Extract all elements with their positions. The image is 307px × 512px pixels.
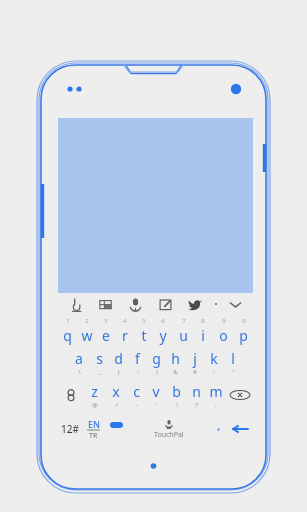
button[interactable]: n bbox=[186, 378, 206, 412]
staticText: \ bbox=[78, 368, 81, 376]
button[interactable]: Period bbox=[210, 412, 226, 446]
staticText: n bbox=[192, 382, 201, 401]
staticText: v bbox=[152, 382, 160, 401]
staticText: u bbox=[179, 326, 188, 345]
staticText: ( bbox=[118, 368, 120, 376]
staticText: # bbox=[193, 368, 197, 376]
button[interactable]: m bbox=[206, 378, 226, 412]
staticText: _ bbox=[98, 368, 101, 376]
staticText: ' bbox=[155, 401, 157, 409]
button[interactable]: c bbox=[126, 378, 146, 412]
staticText: @ bbox=[92, 401, 98, 409]
staticText: b bbox=[172, 382, 181, 401]
staticText: TR bbox=[89, 431, 98, 441]
button[interactable]: k bbox=[204, 346, 223, 378]
staticText: " bbox=[232, 368, 235, 376]
button[interactable]: Space bbox=[127, 412, 210, 446]
staticText: ; bbox=[213, 368, 215, 376]
button[interactable]: d bbox=[109, 346, 128, 378]
button[interactable]: 2 bbox=[77, 316, 96, 346]
button[interactable]: f bbox=[128, 346, 147, 378]
button[interactable]: EN bbox=[82, 412, 105, 446]
button[interactable]: Enter bbox=[226, 412, 253, 446]
staticText: p bbox=[239, 326, 248, 345]
staticText: j bbox=[193, 349, 197, 368]
button[interactable]: Shift bbox=[58, 378, 84, 412]
staticText: 1 bbox=[66, 317, 70, 325]
staticText: t bbox=[141, 326, 147, 345]
staticText: , bbox=[215, 401, 217, 409]
button[interactable]: 3 bbox=[96, 316, 115, 346]
staticText: a bbox=[75, 349, 83, 368]
button[interactable]: h bbox=[166, 346, 185, 378]
staticText: l bbox=[231, 349, 235, 368]
button[interactable]: a bbox=[69, 346, 89, 378]
button[interactable]: z bbox=[84, 378, 105, 412]
staticText: 3 bbox=[104, 317, 108, 325]
button[interactable]: 1 bbox=[58, 316, 77, 346]
staticText: z bbox=[91, 382, 98, 401]
staticText: TouchPal bbox=[154, 430, 184, 440]
button[interactable]: g bbox=[147, 346, 166, 378]
staticText: - bbox=[136, 401, 138, 409]
button[interactable]: x bbox=[105, 378, 126, 412]
button[interactable]: 7 bbox=[173, 316, 193, 346]
staticText: 8 bbox=[201, 317, 205, 325]
staticText: x bbox=[112, 382, 120, 401]
staticText: w bbox=[81, 326, 93, 345]
button[interactable]: 8 bbox=[193, 316, 213, 346]
button[interactable]: Twitter bbox=[180, 293, 211, 315]
button[interactable]: 9 bbox=[213, 316, 233, 346]
staticText: ) bbox=[156, 368, 158, 376]
staticText: 9 bbox=[222, 317, 226, 325]
button[interactable]: 4 bbox=[115, 316, 134, 346]
staticText: d bbox=[114, 349, 123, 368]
staticText: EN bbox=[88, 418, 100, 430]
staticText: ! bbox=[176, 401, 178, 409]
staticText: 2 bbox=[85, 317, 89, 325]
staticText: c bbox=[133, 382, 140, 401]
button[interactable]: Collapse keyboard bbox=[221, 293, 249, 315]
staticText: g bbox=[152, 349, 161, 368]
button[interactable]: 12# bbox=[58, 412, 82, 446]
staticText: e bbox=[102, 326, 110, 345]
button[interactable]: Keyboard layout bbox=[91, 293, 120, 315]
staticText: k bbox=[210, 349, 218, 368]
button[interactable]: j bbox=[185, 346, 204, 378]
button[interactable]: Handwriting bbox=[62, 293, 91, 315]
button[interactable]: More bbox=[211, 293, 221, 315]
staticText: ? bbox=[195, 401, 198, 409]
button[interactable]: l bbox=[223, 346, 242, 378]
staticText: : bbox=[137, 368, 139, 376]
button[interactable]: v bbox=[146, 378, 166, 412]
staticText: 0 bbox=[242, 317, 246, 325]
button[interactable]: Emoji bbox=[105, 412, 127, 446]
staticText: i bbox=[201, 326, 205, 345]
button[interactable]: b bbox=[166, 378, 186, 412]
staticText: & bbox=[173, 368, 178, 376]
button[interactable]: s bbox=[89, 346, 109, 378]
staticText: s bbox=[96, 349, 103, 368]
staticText: f bbox=[135, 349, 140, 368]
button[interactable]: 0 bbox=[233, 316, 253, 346]
button[interactable]: 5 bbox=[134, 316, 153, 346]
staticText: y bbox=[159, 326, 167, 345]
staticText: h bbox=[171, 349, 180, 368]
staticText: m bbox=[209, 382, 223, 401]
staticText: 5 bbox=[142, 317, 146, 325]
staticText: q bbox=[63, 326, 72, 345]
button[interactable]: Edit bbox=[150, 293, 180, 315]
staticText: / bbox=[115, 401, 118, 409]
staticText: 7 bbox=[182, 317, 186, 325]
staticText: 4 bbox=[123, 317, 127, 325]
staticText: 12# bbox=[61, 422, 79, 436]
button[interactable]: Backspace bbox=[226, 378, 253, 412]
staticText: o bbox=[219, 326, 228, 345]
staticText: r bbox=[122, 326, 128, 345]
button[interactable]: 6 bbox=[153, 316, 173, 346]
staticText: 6 bbox=[161, 317, 165, 325]
button[interactable]: Voice input bbox=[120, 293, 150, 315]
